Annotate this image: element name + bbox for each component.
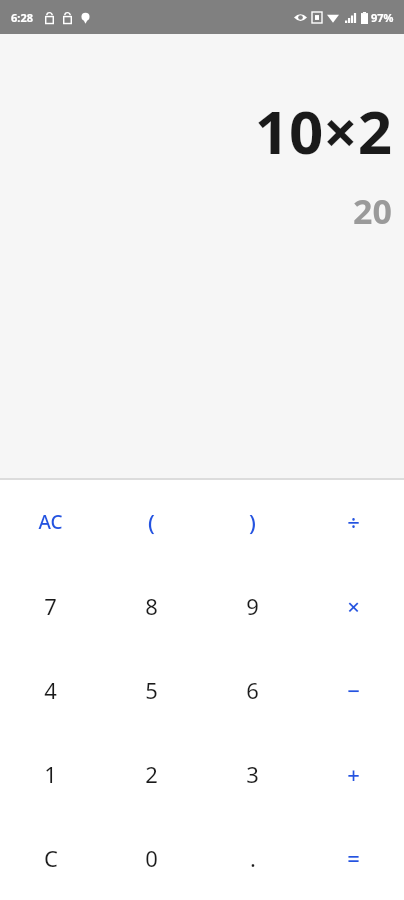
staticText: 8 [145, 591, 158, 621]
staticText: − [347, 675, 360, 705]
button[interactable]: 1 [0, 732, 101, 816]
button[interactable]: = [303, 816, 404, 900]
staticText: 97% [371, 10, 394, 25]
button[interactable]: AC [0, 480, 101, 564]
staticText: 10×2 [254, 90, 392, 172]
staticText: × [347, 591, 360, 621]
button[interactable]: × [303, 564, 404, 648]
staticText: ÷ [347, 507, 360, 537]
staticText: 9 [246, 591, 259, 621]
button[interactable]: ) [202, 480, 303, 564]
button[interactable]: 4 [0, 648, 101, 732]
button[interactable]: ÷ [303, 480, 404, 564]
staticText: 4 [44, 675, 57, 705]
staticText: . [250, 843, 256, 873]
staticText: 7 [44, 591, 57, 621]
button[interactable]: − [303, 648, 404, 732]
button[interactable]: . [202, 816, 303, 900]
staticText: 0 [145, 843, 158, 873]
staticText: = [347, 843, 360, 873]
staticText: 3 [246, 759, 259, 789]
staticText: ( [148, 507, 155, 537]
staticText: 5 [145, 675, 158, 705]
staticText: 6 [246, 675, 259, 705]
button[interactable]: 0 [101, 816, 202, 900]
button[interactable]: 3 [202, 732, 303, 816]
staticText: + [347, 759, 360, 789]
button[interactable]: + [303, 732, 404, 816]
button[interactable]: 2 [101, 732, 202, 816]
button[interactable]: 7 [0, 564, 101, 648]
staticText: 6:28 [11, 10, 33, 25]
button[interactable]: 9 [202, 564, 303, 648]
staticText: ) [249, 507, 256, 537]
staticText: 20 [353, 188, 392, 234]
button[interactable]: ( [101, 480, 202, 564]
staticText: AC [38, 509, 63, 535]
button[interactable]: 6 [202, 648, 303, 732]
button[interactable]: 5 [101, 648, 202, 732]
staticText: 1 [44, 759, 57, 789]
staticText: C [44, 843, 58, 873]
button[interactable]: 8 [101, 564, 202, 648]
button[interactable]: C [0, 816, 101, 900]
staticText: 2 [145, 759, 158, 789]
